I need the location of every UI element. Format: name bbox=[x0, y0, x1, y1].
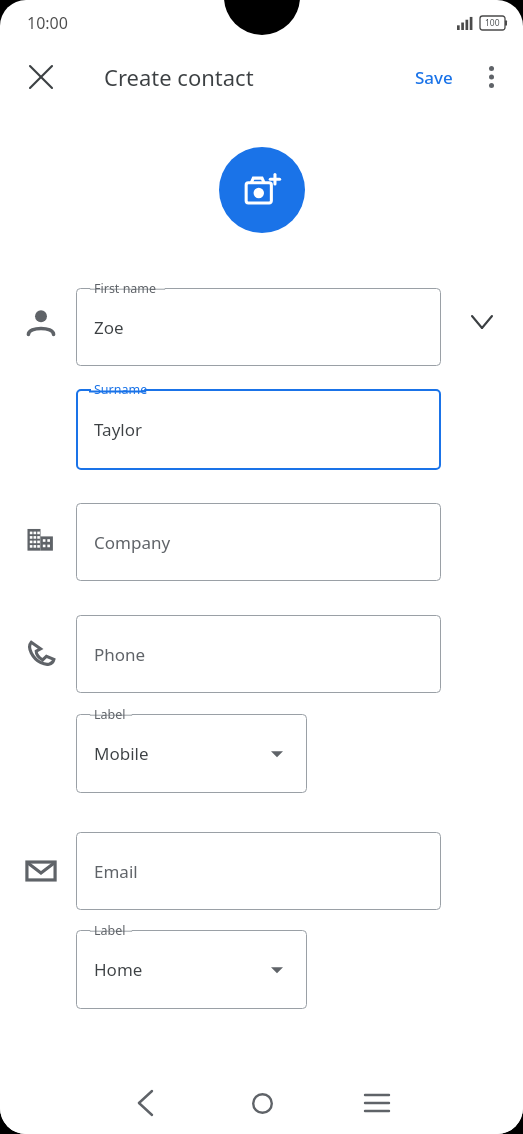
button[interactable]: Save bbox=[407, 60, 461, 95]
button[interactable]: Company bbox=[76, 503, 441, 581]
staticText: 100 bbox=[485, 17, 500, 29]
staticText: First name bbox=[94, 280, 157, 297]
button[interactable]: Recent apps bbox=[349, 1075, 405, 1131]
button[interactable]: More fields bbox=[60, 1062, 179, 1095]
button[interactable]: Back bbox=[117, 1075, 173, 1131]
button[interactable]: Expand name fields bbox=[460, 300, 504, 344]
staticText: 10:00 bbox=[27, 12, 68, 34]
button[interactable]: More options bbox=[467, 53, 515, 101]
staticText: Phone bbox=[94, 643, 146, 666]
button[interactable]: Close bbox=[14, 50, 68, 104]
staticText: Zoe bbox=[94, 316, 124, 339]
staticText: Label bbox=[94, 706, 126, 723]
staticText: Surname bbox=[94, 381, 148, 398]
button[interactable]: First name bbox=[76, 288, 441, 366]
staticText: Create contact bbox=[104, 62, 254, 92]
button[interactable]: Home bbox=[234, 1075, 290, 1131]
button[interactable]: Phone bbox=[76, 615, 441, 693]
staticText: Taylor bbox=[94, 418, 142, 441]
staticText: Label bbox=[94, 922, 126, 939]
staticText: Company bbox=[94, 531, 171, 554]
staticText: Save bbox=[415, 66, 453, 89]
button[interactable]: Email bbox=[76, 832, 441, 910]
staticText: Mobile bbox=[94, 742, 149, 765]
button[interactable]: Label bbox=[76, 930, 307, 1009]
staticText: Home bbox=[94, 958, 143, 981]
staticText: Email bbox=[94, 860, 138, 883]
button[interactable]: Label bbox=[76, 714, 307, 793]
button[interactable]: Surname bbox=[76, 389, 441, 470]
button[interactable]: Add photo bbox=[219, 147, 305, 233]
